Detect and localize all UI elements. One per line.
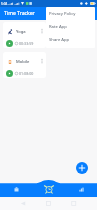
button[interactable]: Tasks [0,180,33,197]
button[interactable]: Start timer [6,70,13,77]
staticText: Privacy Policy [49,11,76,17]
button[interactable]: Timer [33,180,65,197]
staticText: 00:33:59 [19,41,34,46]
staticText: Rate App [49,24,67,30]
button[interactable]: Statistics [65,180,97,197]
staticText: 5:04 [1,2,8,6]
staticText: Mobile [16,59,30,65]
button[interactable]: More options [85,8,96,19]
staticText: Time Tracker [4,10,35,17]
staticText: Yoga [16,29,26,35]
button[interactable]: Task options [38,57,46,65]
staticText: Share App [49,37,70,43]
button[interactable]: Yoga [3,22,46,48]
button[interactable]: Task options [38,27,46,35]
button[interactable]: Mobile [3,52,46,78]
button[interactable]: Privacy Policy [46,7,95,20]
staticText: 01:08:00 [19,71,34,76]
button[interactable]: Add task [76,162,88,174]
button[interactable]: Rate App [46,20,95,33]
button[interactable]: Share App [46,33,95,46]
button[interactable]: Start timer [6,40,13,47]
